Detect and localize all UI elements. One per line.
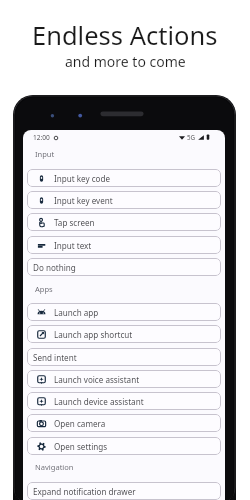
staticText: Launch device assistant [54,396,144,407]
staticText: Open camera [54,418,106,429]
button[interactable]: Launch voice assistant [27,370,221,388]
staticText: Endless Actions [32,18,218,53]
staticText: Input [35,149,55,159]
staticText: Input text [54,240,92,251]
button[interactable]: Open settings [27,437,221,455]
staticText: Launch app [54,307,99,318]
button[interactable]: Input key event [27,191,221,209]
staticText: Input key event [54,195,113,206]
staticText: Apps [35,284,53,294]
button[interactable]: Open camera [27,414,221,432]
staticText: Launch voice assistant [54,374,140,385]
staticText: Open settings [54,441,108,452]
staticText: Expand notification drawer [33,486,136,497]
staticText: Navigation [35,462,74,472]
button[interactable]: Input text [27,236,221,254]
button[interactable]: Do nothing [27,258,221,276]
staticText: Tap screen [54,217,95,228]
staticText: 5G [187,133,196,141]
button[interactable]: Send intent [27,348,221,366]
staticText: and more to come [65,52,186,71]
staticText: Send intent [33,352,77,363]
button[interactable]: Tap screen [27,213,221,231]
button[interactable]: Expand notification drawer [27,482,221,500]
button[interactable]: Launch app [27,303,221,321]
staticText: 12:00 [33,133,50,142]
staticText: Do nothing [33,262,76,273]
staticText: Launch app shortcut [54,329,133,340]
button[interactable]: Launch app shortcut [27,325,221,343]
button[interactable]: Input key code [27,169,221,187]
staticText: Input key code [54,173,111,184]
button[interactable]: Launch device assistant [27,392,221,410]
